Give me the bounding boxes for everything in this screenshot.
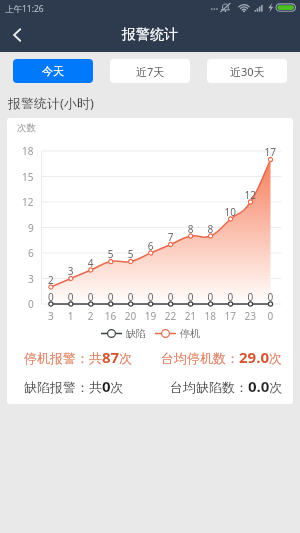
staticText: 上午11:26	[5, 3, 44, 15]
button[interactable]: Back	[0, 18, 34, 52]
staticText: 停机	[180, 327, 200, 340]
button[interactable]: 近30天	[207, 59, 287, 83]
staticText: 缺陷	[126, 327, 146, 340]
staticText: 近7天	[136, 64, 165, 79]
button[interactable]: 近7天	[110, 59, 190, 83]
staticText: 近30天	[230, 64, 265, 79]
button[interactable]: 今天	[13, 59, 93, 83]
staticText: 报警统计(小时)	[8, 94, 94, 112]
staticText: 报警统计	[122, 26, 178, 44]
staticText: 今天	[42, 64, 64, 78]
staticText: 缺陷报警：共0次	[24, 376, 124, 396]
staticText: 台均缺陷数：0.0次	[170, 376, 283, 396]
staticText: 台均停机数：29.0次	[161, 347, 282, 367]
staticText: 停机报警：共87次	[24, 347, 133, 367]
